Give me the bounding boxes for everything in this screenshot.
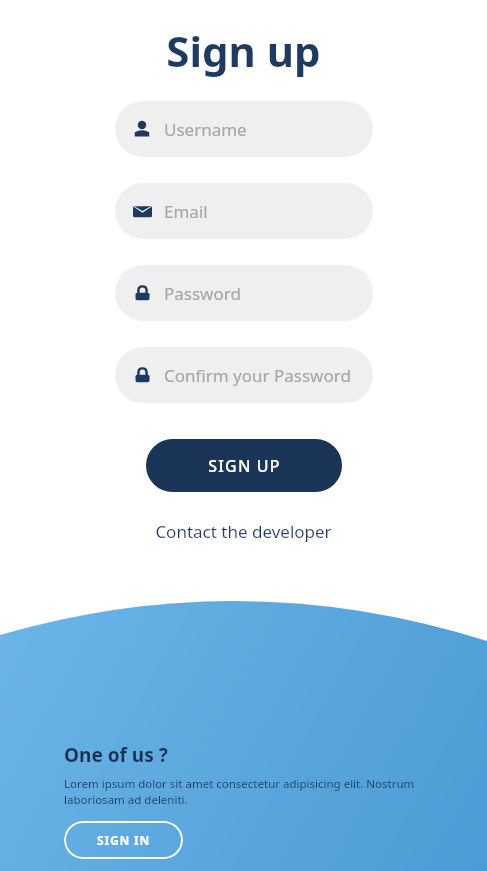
staticText: Lorem ipsum dolor sit amet consectetur a…: [64, 776, 415, 807]
staticText: Email: [164, 200, 208, 223]
button[interactable]: SIGN IN: [64, 821, 183, 859]
button[interactable]: Email: [115, 183, 373, 239]
staticText: Confirm your Password: [164, 364, 351, 387]
staticText: Username: [164, 118, 247, 141]
staticText: SIGN IN: [97, 832, 150, 848]
staticText: SIGN UP: [208, 455, 281, 477]
button[interactable]: SIGN UP: [146, 439, 342, 492]
button[interactable]: Username: [115, 101, 373, 157]
staticText: Contact the developer: [155, 520, 332, 543]
staticText: One of us ?: [64, 742, 168, 768]
button[interactable]: Contact the developer: [149, 518, 338, 545]
button[interactable]: Password: [115, 265, 373, 321]
staticText: Sign up: [166, 22, 321, 79]
staticText: Password: [164, 282, 241, 305]
button[interactable]: Confirm your Password: [115, 347, 373, 403]
